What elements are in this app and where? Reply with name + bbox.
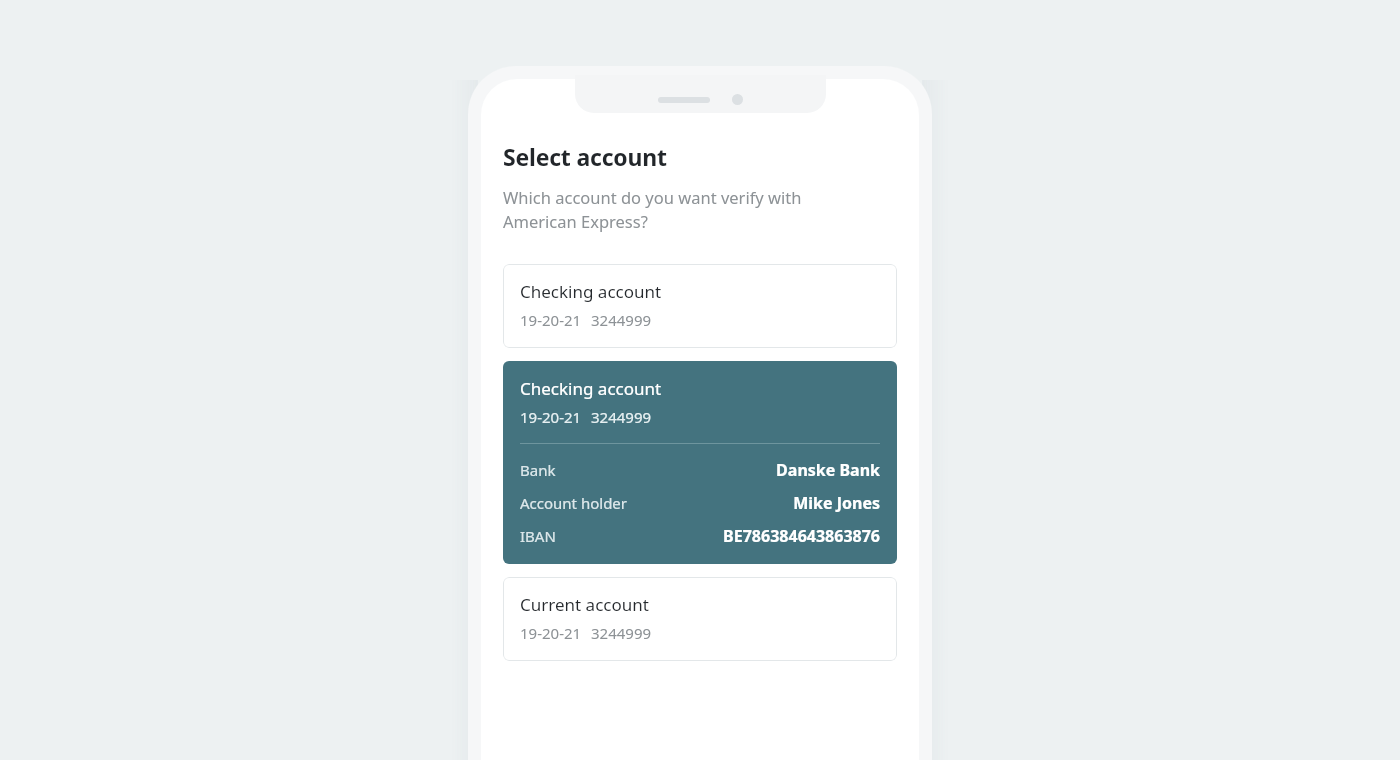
staticText: Bank xyxy=(520,460,556,480)
button[interactable]: Checking account xyxy=(503,264,897,348)
staticText: Checking account xyxy=(520,377,662,400)
staticText: Mike Jones xyxy=(793,492,880,514)
staticText: 19-20-21 xyxy=(520,310,582,330)
staticText: IBAN xyxy=(520,526,556,546)
staticText: Select account xyxy=(503,141,667,172)
staticText: Current account xyxy=(520,593,649,616)
staticText: 3244999 xyxy=(591,407,652,427)
staticText: Checking account xyxy=(520,280,662,303)
button[interactable]: Current account xyxy=(503,577,897,661)
staticText: 3244999 xyxy=(591,623,652,643)
staticText: 3244999 xyxy=(591,310,652,330)
staticText: 19-20-21 xyxy=(520,407,582,427)
staticText: BE786384643863876 xyxy=(723,525,880,547)
staticText: Danske Bank xyxy=(776,459,880,481)
staticText: Which account do you want verify with Am… xyxy=(503,186,849,233)
staticText: Account holder xyxy=(520,493,628,513)
staticText: 19-20-21 xyxy=(520,623,582,643)
button[interactable]: Checking account xyxy=(503,361,897,564)
